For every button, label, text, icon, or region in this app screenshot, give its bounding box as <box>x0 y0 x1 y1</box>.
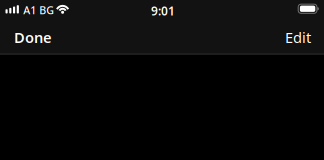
staticText: 9:01 <box>151 3 175 19</box>
staticText: Edit <box>285 27 311 47</box>
group: Battery nearly full <box>298 4 319 13</box>
staticText: Done <box>14 27 52 47</box>
button[interactable]: Done <box>0 20 64 53</box>
button[interactable]: Edit <box>273 20 324 53</box>
staticText: A1 BG <box>23 3 54 17</box>
group: Wi-Fi <box>56 4 69 13</box>
group: Cellular signal: 4 bars <box>5 5 19 13</box>
